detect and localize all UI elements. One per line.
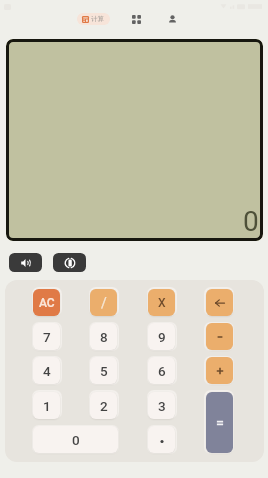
button[interactable]: X bbox=[148, 289, 175, 316]
button[interactable]: AC bbox=[33, 289, 60, 316]
button[interactable]: 3 bbox=[148, 392, 175, 419]
button[interactable]: Profile bbox=[164, 11, 180, 27]
button[interactable]: 4 bbox=[33, 357, 60, 384]
button[interactable]: Decimal point bbox=[148, 426, 175, 453]
button[interactable]: 2 bbox=[90, 392, 117, 419]
staticText: 2 bbox=[100, 398, 108, 414]
button[interactable]: Plus bbox=[206, 357, 233, 384]
staticText: 0 bbox=[72, 432, 80, 448]
button[interactable]: Equals bbox=[206, 392, 233, 453]
button[interactable]: 0 bbox=[33, 426, 118, 453]
staticText: 3 bbox=[158, 398, 166, 414]
staticText: 4 bbox=[43, 363, 51, 379]
button[interactable]: Sound on bbox=[9, 253, 42, 272]
staticText: 9 bbox=[158, 329, 166, 345]
staticText: 8 bbox=[100, 329, 108, 345]
button[interactable]: Backspace bbox=[206, 289, 233, 316]
button[interactable]: 5 bbox=[90, 357, 117, 384]
staticText: 1 bbox=[43, 398, 51, 414]
staticText: 5 bbox=[100, 363, 108, 379]
staticText: 计算 bbox=[91, 15, 104, 23]
staticText: / bbox=[101, 295, 107, 311]
button[interactable]: Vibrate bbox=[53, 253, 86, 272]
staticText: 6 bbox=[158, 363, 166, 379]
staticText: 0 bbox=[243, 205, 259, 238]
button[interactable]: / bbox=[90, 289, 117, 316]
staticText: AC bbox=[39, 296, 55, 310]
button[interactable]: All apps bbox=[128, 11, 144, 27]
staticText: X bbox=[158, 296, 166, 310]
button[interactable]: 计算 bbox=[77, 13, 110, 25]
button[interactable]: 7 bbox=[33, 323, 60, 350]
button[interactable]: 9 bbox=[148, 323, 175, 350]
staticText: 7 bbox=[43, 329, 51, 345]
button[interactable]: 1 bbox=[33, 392, 60, 419]
button[interactable]: Minus bbox=[206, 323, 233, 350]
button[interactable]: 8 bbox=[90, 323, 117, 350]
button[interactable]: 6 bbox=[148, 357, 175, 384]
